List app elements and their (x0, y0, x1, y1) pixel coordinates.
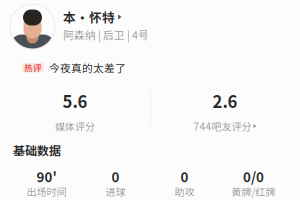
staticText: 今夜真的太差了 (49, 60, 126, 75)
button[interactable]: 热评 (22, 60, 126, 75)
staticText: 助攻 (174, 184, 194, 199)
staticText: 出场时间 (26, 184, 66, 199)
staticText: 0/0 (243, 167, 264, 186)
button[interactable]: 2.6 (193, 89, 256, 133)
staticText: 本·怀特 (63, 8, 115, 26)
staticText: 0 (111, 167, 119, 186)
staticText: 黄牌/红牌 (231, 184, 275, 199)
staticText: 5.6 (62, 89, 87, 113)
staticText: 基础数据 (13, 141, 61, 159)
button[interactable]: 5.6 (55, 89, 95, 133)
staticText: 媒体评分 (55, 119, 95, 133)
staticText: 744吧友评分 (193, 119, 251, 133)
staticText: 0 (180, 167, 188, 186)
staticText: 2.6 (212, 89, 237, 113)
button[interactable]: 本·怀特 (63, 8, 121, 26)
staticText: 进球 (105, 184, 125, 199)
staticText: 90' (36, 167, 56, 186)
staticText: 阿森纳 | 后卫 | 4号 (63, 27, 149, 42)
staticText: 热评 (24, 61, 42, 74)
